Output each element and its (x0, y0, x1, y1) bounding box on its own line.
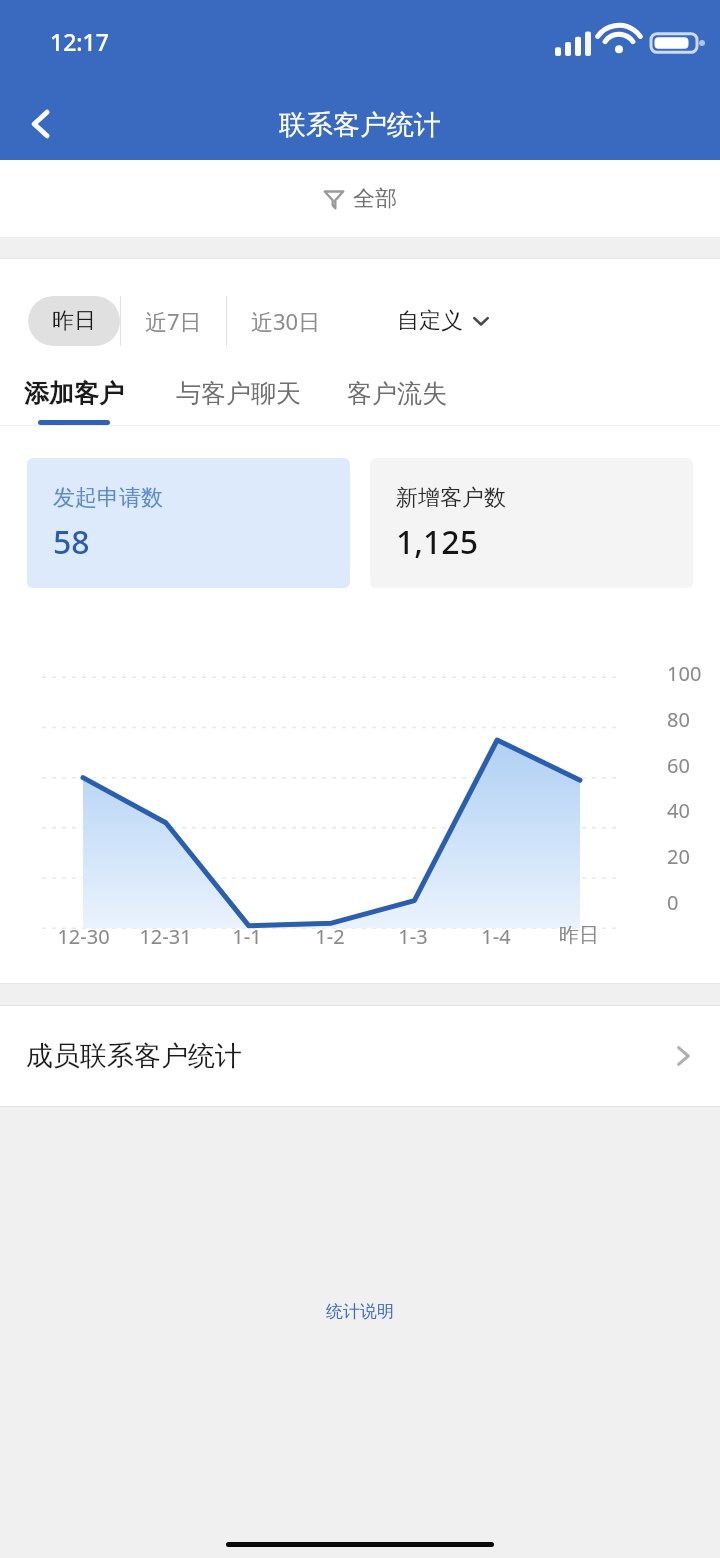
button[interactable]: 全部 (313, 179, 407, 219)
staticText: 成员联系客户统计 (26, 1039, 242, 1073)
button[interactable]: 与客户聊天 (174, 378, 303, 425)
staticText: 与客户聊天 (176, 378, 301, 409)
staticText: 1-2 (315, 923, 345, 950)
staticText: 新增客户数 (396, 484, 506, 512)
button[interactable]: 自定义 (371, 296, 515, 346)
staticText: 自定义 (397, 307, 463, 335)
button[interactable]: 近7日 (121, 296, 226, 346)
staticText: 80 (667, 706, 690, 733)
staticText: 近7日 (145, 306, 202, 336)
staticText: 发起申请数 (53, 484, 163, 512)
button[interactable]: 新增客户数 (370, 458, 693, 588)
staticText: 全部 (353, 185, 397, 213)
staticText: 0 (667, 889, 679, 916)
button[interactable]: 成员联系客户统计 (0, 1006, 720, 1106)
staticText: 联系客户统计 (279, 108, 441, 142)
staticText: 昨日 (559, 923, 599, 948)
staticText: 100 (667, 660, 702, 687)
staticText: 60 (667, 752, 690, 779)
staticText: 1,125 (396, 520, 478, 564)
button[interactable]: 近30日 (227, 296, 345, 346)
button[interactable]: 昨日 (28, 296, 120, 346)
staticText: 近30日 (251, 306, 321, 336)
staticText: 1-3 (398, 923, 428, 950)
staticText: 昨日 (52, 307, 96, 335)
button[interactable]: 发起申请数 (27, 458, 350, 588)
button[interactable]: 统计说明 (316, 1295, 404, 1328)
staticText: 12:17 (50, 26, 109, 57)
button[interactable]: Back (6, 88, 78, 160)
staticText: 20 (667, 843, 690, 870)
staticText: 1-4 (481, 923, 511, 950)
button[interactable]: 客户流失 (345, 378, 449, 425)
staticText: 40 (667, 797, 690, 824)
staticText: 58 (53, 520, 90, 564)
staticText: 12-30 (57, 923, 110, 950)
staticText: 客户流失 (347, 378, 447, 409)
button[interactable]: 添加客户 (22, 378, 126, 425)
staticText: 1-1 (232, 923, 262, 950)
staticText: 统计说明 (326, 1301, 394, 1322)
staticText: 12-31 (139, 923, 192, 950)
staticText: 添加客户 (24, 378, 124, 409)
